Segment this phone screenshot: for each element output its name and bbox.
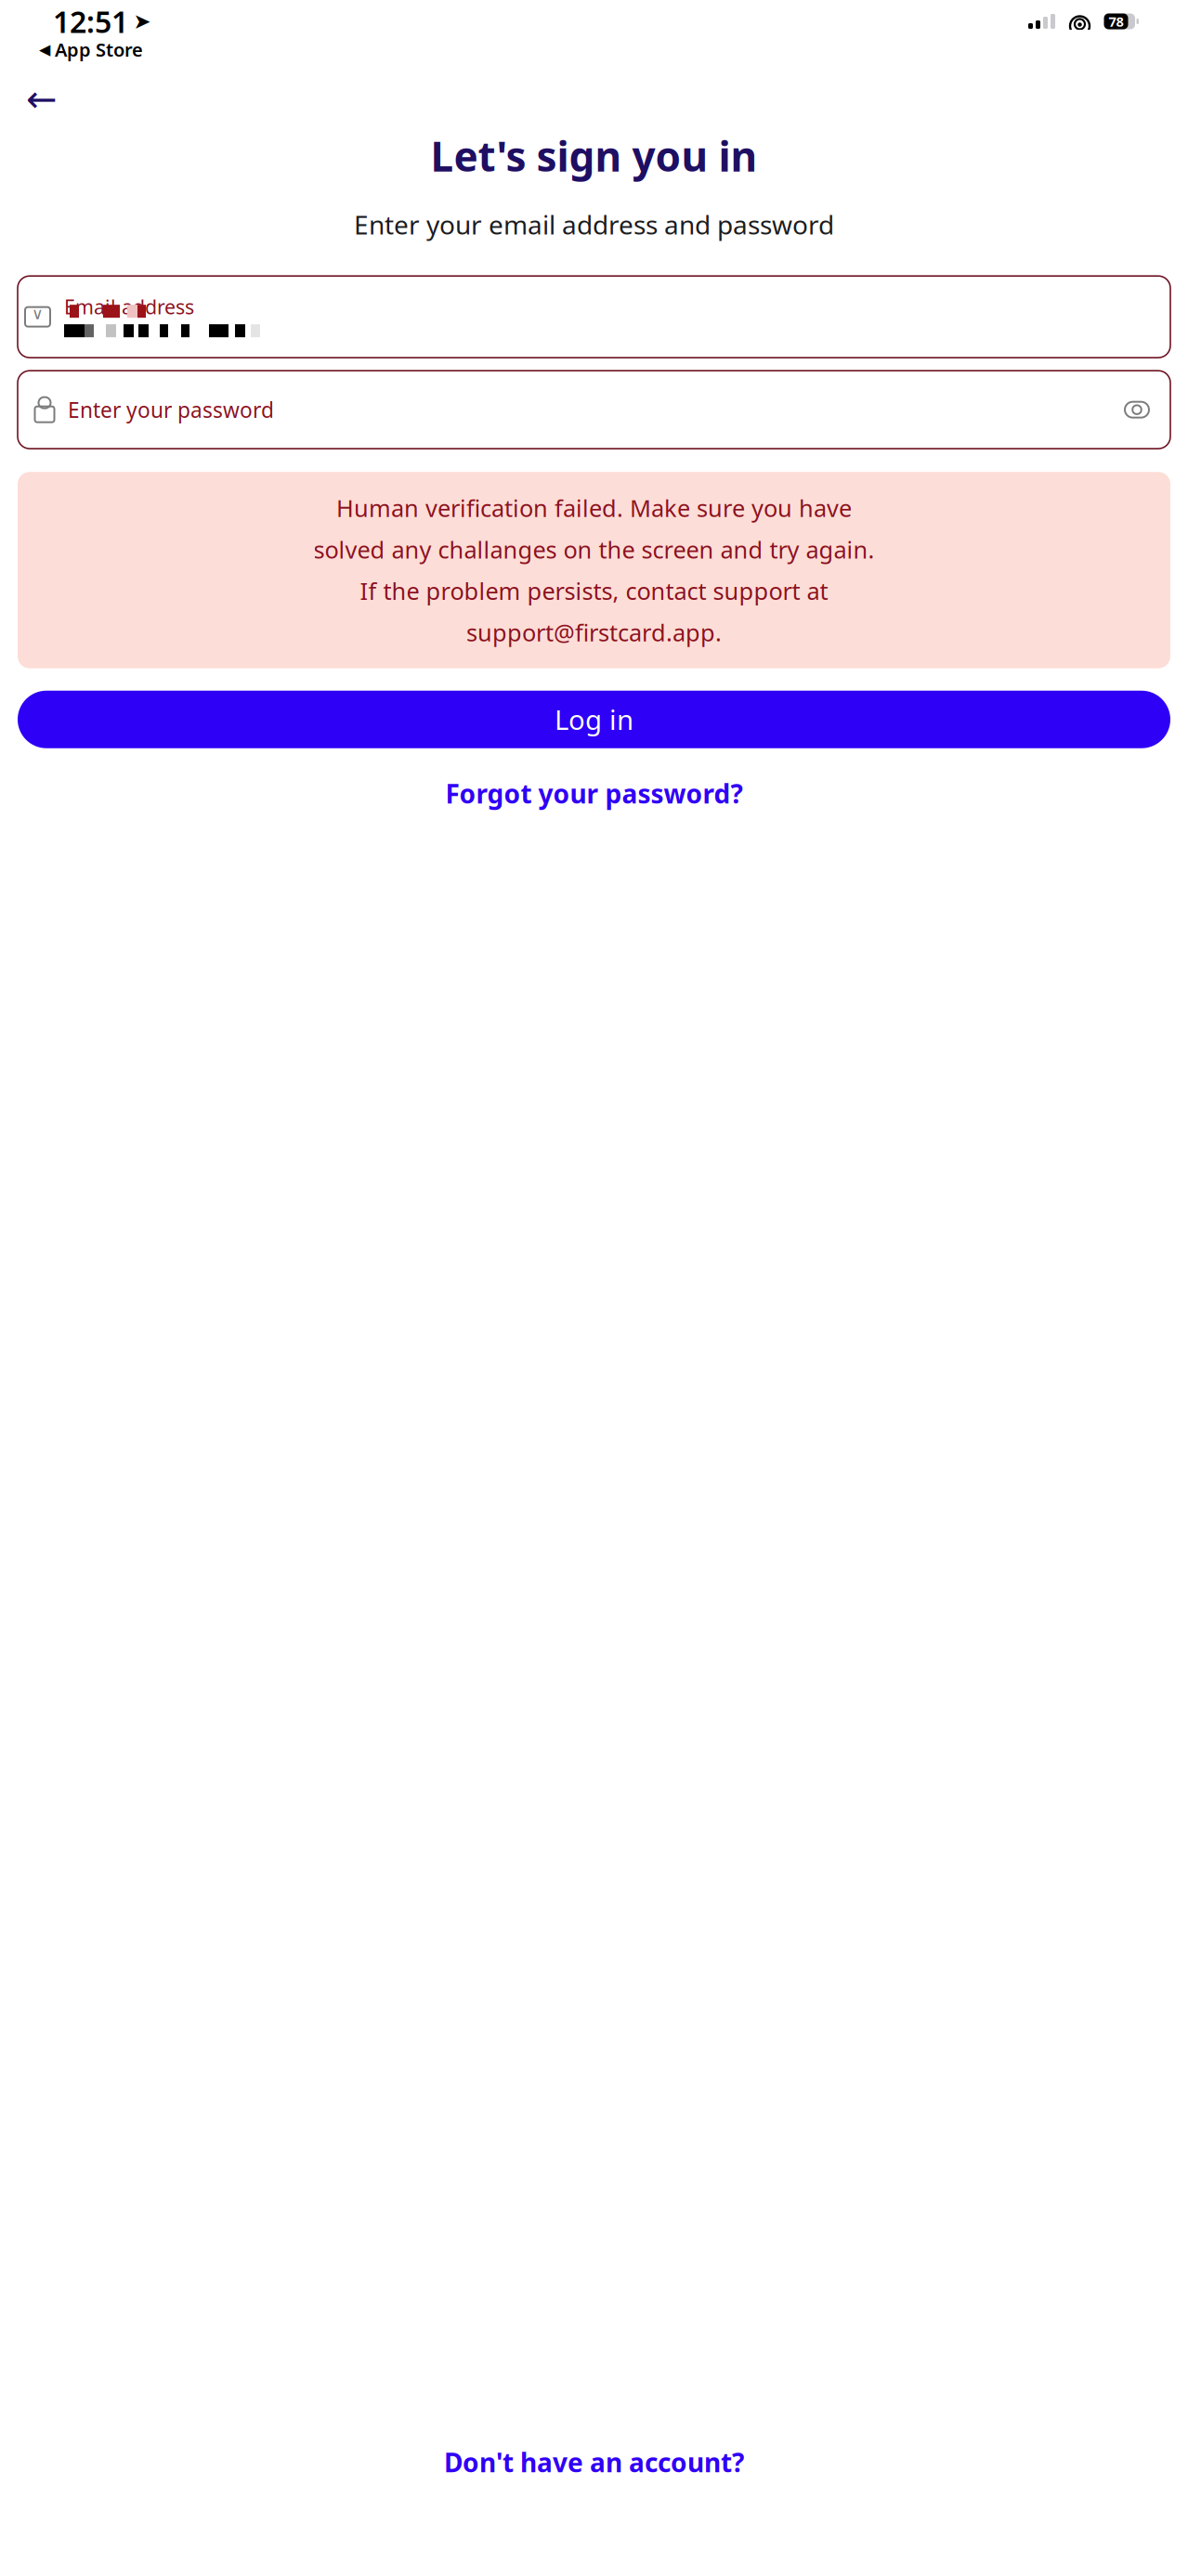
staticText: Forgot your password? [445,776,743,811]
button[interactable]: Don't have an account? [427,2437,761,2487]
staticText: ← [26,78,58,120]
staticText: solved any challanges on the screen and … [313,534,875,565]
staticText: support@firstcard.app. [466,617,722,648]
staticText: Don't have an account? [444,2445,744,2479]
staticText: ◀ [39,41,50,58]
button[interactable]: Enter your password [18,371,1170,449]
staticText: Log in [555,701,633,738]
staticText: If the problem persists, contact support… [360,575,828,606]
staticText: Human verification failed. Make sure you… [336,492,852,524]
staticText: Enter your email address and password [354,207,834,242]
staticText: Email address [64,293,194,320]
staticText: Let's sign you in [431,129,757,183]
staticText: 12:51 [53,2,128,41]
staticText: App Store [55,37,143,62]
staticText: Enter your password [68,396,274,424]
button[interactable]: Log in [18,691,1170,748]
button[interactable]: ∨ [18,276,1170,358]
button[interactable]: Back [21,79,62,119]
button[interactable]: Forgot your password? [429,769,759,818]
staticText: ∨ [32,304,44,323]
staticText: 78 [1109,12,1123,30]
staticText: ➤ [133,9,151,33]
